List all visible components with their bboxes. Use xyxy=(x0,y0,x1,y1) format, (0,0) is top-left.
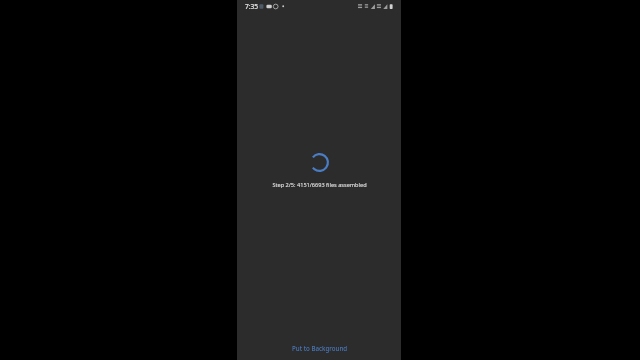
other: Loading xyxy=(310,153,329,172)
staticText: Put to Background xyxy=(292,344,348,352)
other: Notifications xyxy=(259,4,289,9)
staticText: Step 2/5: 4151/6693 files assembled xyxy=(272,181,367,189)
other: Signal and battery status xyxy=(358,4,393,9)
button[interactable]: Put to Background xyxy=(237,340,401,360)
staticText: 7:35 xyxy=(245,2,259,11)
